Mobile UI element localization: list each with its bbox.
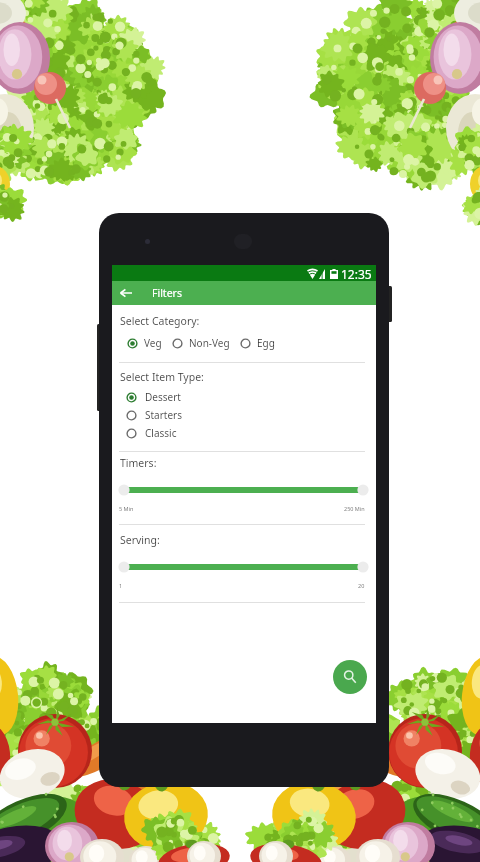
button[interactable]: Veg [127,333,162,353]
staticText: Timers: [120,456,157,470]
staticText: 5 Min [119,505,134,512]
staticText: Select Category: [120,314,200,328]
button[interactable]: Classic [126,424,357,442]
button[interactable]: Egg [240,333,275,353]
staticText: Classic [145,426,177,440]
staticText: Select Item Type: [120,370,204,384]
staticText: 1 [119,582,123,589]
staticText: 12:35 [341,266,372,282]
staticText: Non-Veg [189,336,230,350]
staticText: Serving: [120,533,160,547]
staticText: Dessert [145,390,181,404]
button[interactable]: Back [115,281,137,305]
staticText: Egg [257,336,275,350]
button[interactable]: Search [333,660,367,694]
staticText: 250 Min [344,505,365,512]
button[interactable]: Starters [126,406,357,424]
button[interactable]: Dessert [126,388,357,406]
staticText: 20 [358,582,365,589]
staticText: Starters [145,408,183,422]
button[interactable]: Non-Veg [172,333,230,353]
staticText: Veg [144,336,162,350]
staticText: Filters [152,286,182,300]
